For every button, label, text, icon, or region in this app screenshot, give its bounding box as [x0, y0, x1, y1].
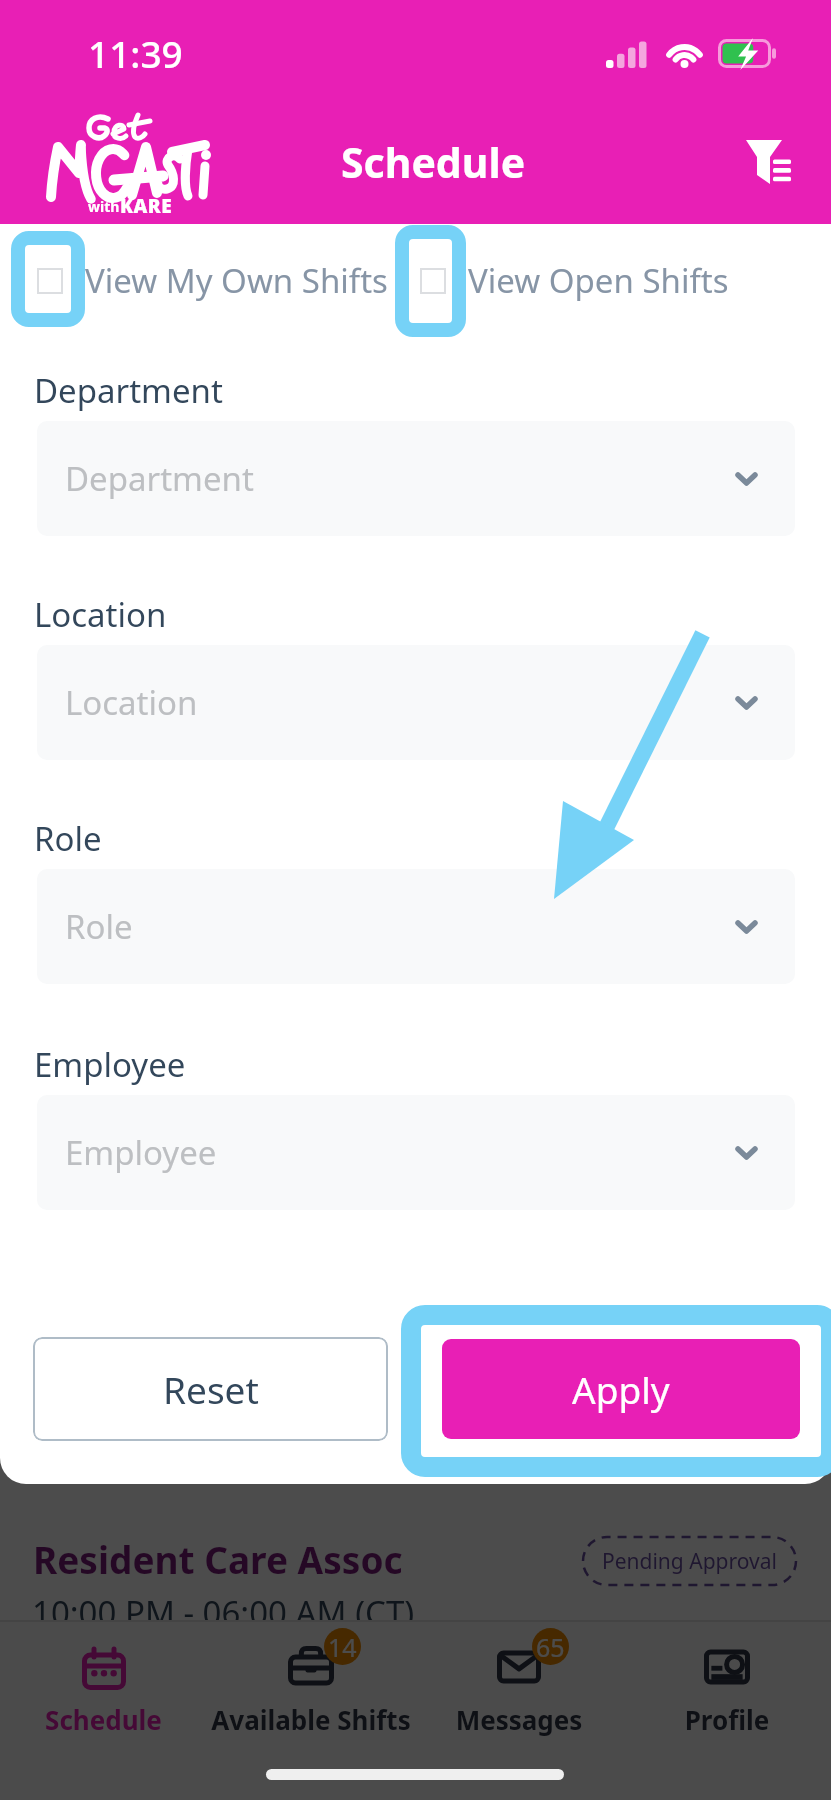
button[interactable]: 65 — [415, 1620, 623, 1800]
button[interactable]: Filter — [736, 132, 796, 192]
button[interactable]: View My Own Shifts — [37, 258, 388, 303]
staticText: 65 — [536, 1630, 565, 1664]
staticText: Location — [65, 680, 198, 725]
staticText: Available Shifts — [207, 1702, 415, 1737]
button[interactable]: View Open Shifts — [420, 258, 729, 303]
staticText: Messages — [415, 1702, 623, 1737]
staticText: View Open Shifts — [468, 258, 729, 303]
staticText: 11:39 — [88, 28, 183, 78]
staticText: Department — [34, 368, 223, 413]
button[interactable]: 14 — [207, 1620, 415, 1800]
staticText: View My Own Shifts — [85, 258, 388, 303]
staticText: Reset — [163, 1364, 259, 1414]
button[interactable]: Employee — [37, 1095, 795, 1210]
staticText: Location — [34, 592, 167, 637]
button[interactable]: Location — [37, 645, 795, 760]
staticText: Resident Care Assoc — [33, 1534, 403, 1584]
button[interactable]: Role — [37, 869, 795, 984]
staticText: Pending Approval — [602, 1547, 777, 1576]
staticText: Employee — [65, 1130, 217, 1175]
staticText: 14 — [328, 1630, 357, 1664]
button[interactable]: Profile — [623, 1620, 831, 1800]
button[interactable]: Reset — [33, 1337, 388, 1441]
staticText: with — [88, 197, 120, 216]
staticText: Role — [65, 904, 133, 949]
staticText: Schedule — [0, 1702, 207, 1737]
staticText: Profile — [623, 1702, 831, 1737]
staticText: Schedule — [341, 134, 526, 190]
staticText: 10:00 PM - 06:00 AM (CT) — [32, 1590, 415, 1635]
staticText: KARE — [120, 193, 173, 219]
staticText: Employee — [34, 1042, 186, 1087]
staticText: Department — [65, 456, 254, 501]
staticText: Apply — [572, 1364, 670, 1414]
button[interactable]: Department — [37, 421, 795, 536]
button[interactable]: Apply — [442, 1339, 800, 1439]
staticText: Role — [34, 816, 102, 861]
button[interactable]: Schedule — [0, 1620, 207, 1800]
